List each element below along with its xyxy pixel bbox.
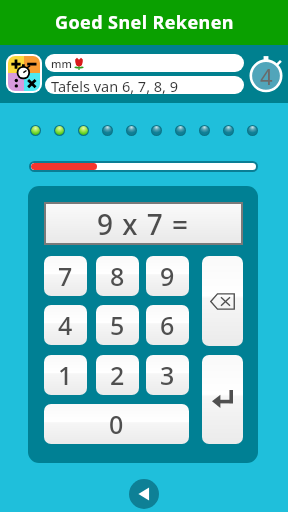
staticText: 8 [110,259,125,293]
button[interactable]: 8 [96,256,139,296]
staticText: 1 [58,358,73,392]
button[interactable]: 4 [44,305,87,345]
button[interactable]: 7 [44,256,87,296]
staticText: 0 [109,407,124,441]
button[interactable]: Back [129,479,159,509]
staticText: 2 [110,358,125,392]
staticText: 3 [160,358,175,392]
staticText: 5 [110,308,125,342]
button[interactable]: Enter [202,355,243,444]
button[interactable]: 6 [146,305,189,345]
button[interactable]: 5 [96,305,139,345]
button[interactable]: 0 [44,404,189,444]
staticText: 9 x 7 = [97,205,190,243]
button[interactable]: 3 [146,355,189,395]
staticText: mm [51,56,72,71]
staticText: 7 [58,259,73,293]
staticText: Goed Snel Rekenen [55,10,234,35]
button[interactable]: 9 [146,256,189,296]
staticText: 4 [260,61,273,91]
staticText: 9 [160,259,175,293]
button[interactable]: Backspace [202,256,243,346]
button[interactable]: App icon [8,56,40,91]
button[interactable]: Tafels van 6, 7, 8, 9 [45,76,244,94]
staticText: 6 [160,308,175,342]
button[interactable]: 2 [96,355,139,395]
staticText: 4 [58,308,73,342]
staticText: Tafels van 6, 7, 8, 9 [51,76,179,94]
button[interactable]: mm [45,54,244,72]
button[interactable]: 1 [44,355,87,395]
